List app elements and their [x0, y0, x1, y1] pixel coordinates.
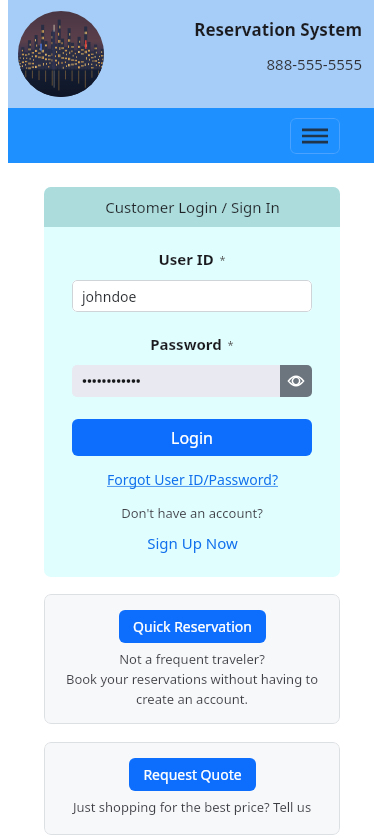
staticText: Customer Login / Sign In [105, 197, 280, 217]
staticText: Just shopping for the best price? Tell u… [54, 798, 330, 819]
staticText: Sign Up Now [147, 533, 238, 553]
staticText: Don't have an account? [121, 504, 263, 522]
button[interactable]: Request Quote [129, 758, 256, 791]
staticText: Reservation System [194, 18, 362, 41]
button[interactable]: Sign Up Now [145, 531, 240, 555]
staticText: Not a frequent traveler? Book your reser… [54, 650, 330, 708]
button[interactable]: Forgot User ID/Password? [105, 468, 280, 491]
staticText: •••••••••••• [82, 372, 141, 390]
button[interactable]: Quick Reservation [119, 610, 266, 643]
staticText: Forgot User ID/Password? [107, 470, 278, 489]
staticText: Quick Reservation [133, 617, 252, 636]
staticText: * [219, 252, 226, 267]
staticText: johndoe [82, 287, 137, 306]
button[interactable]: johndoe [72, 280, 312, 312]
staticText: Request Quote [143, 765, 242, 784]
staticText: 888-555-5555 [266, 54, 362, 74]
staticText: * [227, 337, 234, 352]
button[interactable]: Open navigation menu [290, 118, 340, 154]
staticText: Login [171, 427, 213, 449]
staticText: Password [150, 334, 222, 354]
button[interactable]: Show password [280, 365, 312, 397]
staticText: User ID [158, 249, 214, 269]
button[interactable]: •••••••••••• [72, 365, 280, 397]
button[interactable]: Login [72, 419, 312, 456]
